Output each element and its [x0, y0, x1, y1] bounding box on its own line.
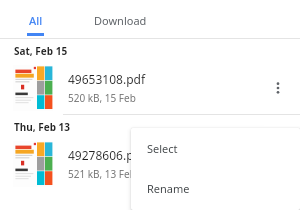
staticText: Rename: [147, 181, 190, 196]
staticText: 49278606.pdf: [68, 147, 146, 163]
button[interactable]: 49653108.pdf: [0, 62, 300, 114]
staticText: 520 kB, 15 Feb: [68, 91, 136, 105]
staticText: Sat, Feb 15: [14, 44, 68, 58]
button[interactable]: Rename: [131, 168, 300, 208]
staticText: All: [29, 13, 43, 28]
button[interactable]: Download: [70, 0, 170, 38]
staticText: 49653108.pdf: [68, 71, 146, 87]
staticText: 521 kB, 13 Feb: [68, 167, 136, 181]
button[interactable]: All: [0, 0, 70, 38]
button[interactable]: 49278606.pdf: [0, 138, 300, 190]
button[interactable]: Select: [131, 128, 300, 168]
staticText: Thu, Feb 13: [14, 120, 71, 134]
staticText: Download: [94, 13, 147, 28]
button[interactable]: More options: [264, 62, 292, 114]
staticText: Select: [147, 141, 178, 156]
